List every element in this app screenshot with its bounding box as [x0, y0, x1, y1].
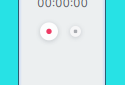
staticText: 00:00:00 — [37, 0, 88, 10]
button[interactable]: Stop — [70, 26, 81, 37]
button[interactable]: Record — [40, 22, 58, 40]
